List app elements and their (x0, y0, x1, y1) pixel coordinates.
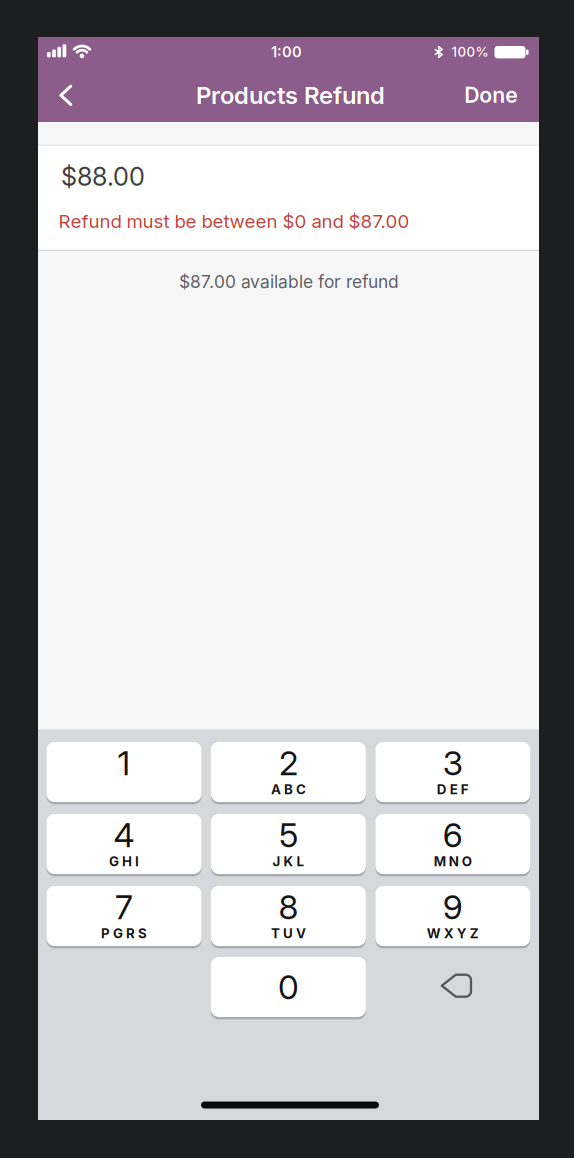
staticText: $87.00 available for refund (179, 272, 399, 292)
staticText: W X Y Z (427, 926, 479, 941)
staticText: 2 (279, 743, 298, 783)
staticText: D E F (437, 782, 469, 797)
button[interactable]: Delete (379, 956, 534, 1016)
staticText: Done (464, 82, 518, 107)
staticText: G H I (109, 854, 139, 869)
staticText: T U V (271, 926, 306, 941)
button[interactable]: 2 (211, 742, 366, 802)
staticText: 6 (443, 815, 463, 855)
staticText: 7 (115, 887, 133, 927)
button[interactable]: 6 (375, 814, 530, 874)
staticText: 100% (451, 44, 488, 60)
staticText: 3 (443, 743, 463, 783)
staticText: 8 (278, 887, 298, 927)
staticText: J K L (272, 854, 304, 869)
staticText: $88.00 (61, 162, 145, 191)
staticText: 9 (443, 887, 463, 927)
staticText: 0 (278, 967, 299, 1007)
staticText: Refund must be between $0 and $87.00 (58, 210, 409, 232)
button[interactable]: 0 (211, 957, 366, 1017)
staticText: 4 (113, 815, 134, 855)
staticText: 1 (117, 743, 130, 783)
button[interactable]: 9 (375, 886, 530, 946)
staticText: Products Refund (196, 81, 385, 109)
staticText: A B C (271, 782, 306, 797)
button[interactable]: 8 (211, 886, 366, 946)
button[interactable]: 1 (46, 742, 201, 802)
staticText: 1:00 (271, 43, 302, 60)
staticText: M N O (434, 854, 472, 869)
staticText: P G R S (101, 926, 147, 941)
button[interactable]: 7 (46, 886, 201, 946)
button[interactable]: Back (54, 81, 78, 109)
staticText: 5 (279, 815, 298, 855)
button[interactable]: 5 (211, 814, 366, 874)
button[interactable]: 3 (375, 742, 530, 802)
button[interactable]: Done (464, 82, 518, 107)
button[interactable]: 4 (46, 814, 201, 874)
